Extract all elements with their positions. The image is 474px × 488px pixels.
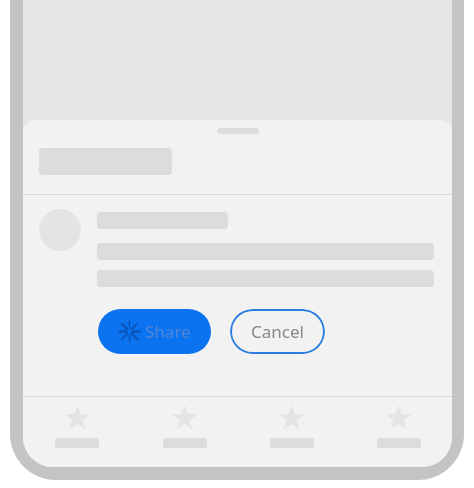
staticText: Cancel bbox=[251, 320, 304, 343]
staticText: Share bbox=[145, 320, 191, 343]
button[interactable]: Tab 4 bbox=[345, 397, 452, 467]
button[interactable] bbox=[39, 209, 434, 287]
button[interactable]: Tab 3 bbox=[238, 397, 345, 467]
button[interactable]: Share bbox=[98, 309, 211, 354]
button[interactable]: Tab 1 bbox=[23, 397, 131, 467]
button[interactable]: Cancel bbox=[230, 309, 325, 354]
button[interactable]: Tab 2 bbox=[131, 397, 238, 467]
